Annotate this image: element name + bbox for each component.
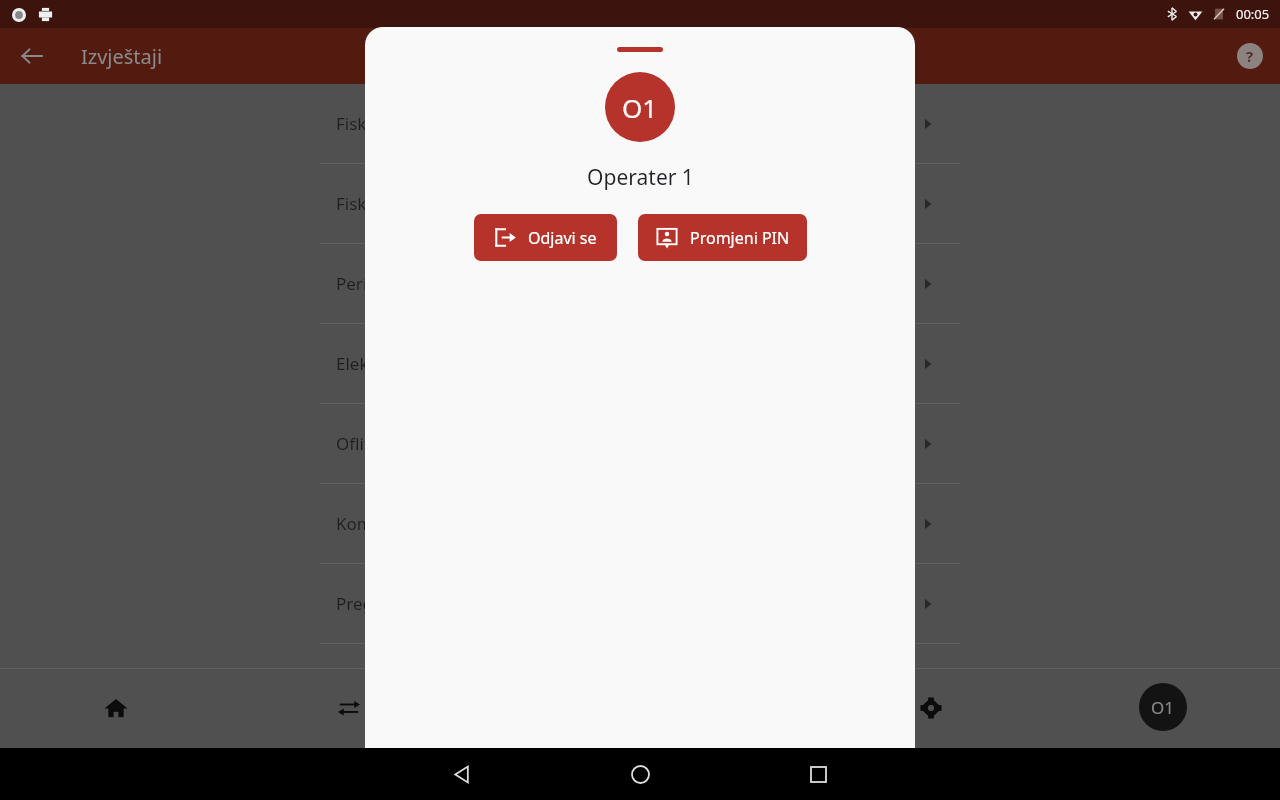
staticText: O1 [622, 90, 658, 125]
button[interactable]: Operator [1139, 683, 1187, 731]
button[interactable]: Komercijalni izvještaj [0, 484, 1280, 563]
staticText: Izvještaji [81, 43, 163, 70]
button[interactable]: Odjavi se [474, 214, 617, 261]
button[interactable]: Pregled računa [0, 564, 1280, 643]
button[interactable]: Fiskalni dnevni izvještaj [0, 84, 1280, 163]
button[interactable]: Recent apps [794, 750, 842, 798]
button[interactable]: Elektronski žurnal [0, 324, 1280, 403]
button[interactable]: Back [12, 36, 52, 76]
button[interactable]: Back [438, 750, 486, 798]
button[interactable]: Home [616, 750, 664, 798]
button[interactable]: Periodični izvještaj [0, 244, 1280, 323]
staticText: Operater 1 [587, 163, 694, 192]
button[interactable]: Home [92, 684, 140, 732]
staticText: Fiskalni periodični izvještaj [336, 192, 547, 215]
staticText: Odjavi se [528, 227, 597, 249]
staticText: ? [1246, 46, 1254, 66]
button[interactable]: Settings [907, 684, 955, 732]
staticText: Oflineski izvještaj [336, 432, 474, 455]
button[interactable]: Oflineski izvještaj [0, 404, 1280, 483]
staticText: Promjeni PIN [690, 227, 790, 249]
staticText: 00:05 [1236, 5, 1270, 23]
button[interactable]: Help [1230, 36, 1270, 76]
button[interactable]: Transactions [325, 684, 373, 732]
staticText: Pregled računa [336, 592, 457, 615]
staticText: O1 [1151, 696, 1175, 719]
staticText: Elektronski žurnal [336, 352, 479, 375]
button[interactable]: Fiskalni periodični izvještaj [0, 164, 1280, 243]
staticText: Fiskalni dnevni izvještaj [336, 112, 522, 135]
button[interactable]: Promjeni PIN [638, 214, 807, 261]
staticText: Periodični izvještaj [336, 272, 484, 295]
staticText: Komercijalni izvještaj [336, 512, 503, 535]
